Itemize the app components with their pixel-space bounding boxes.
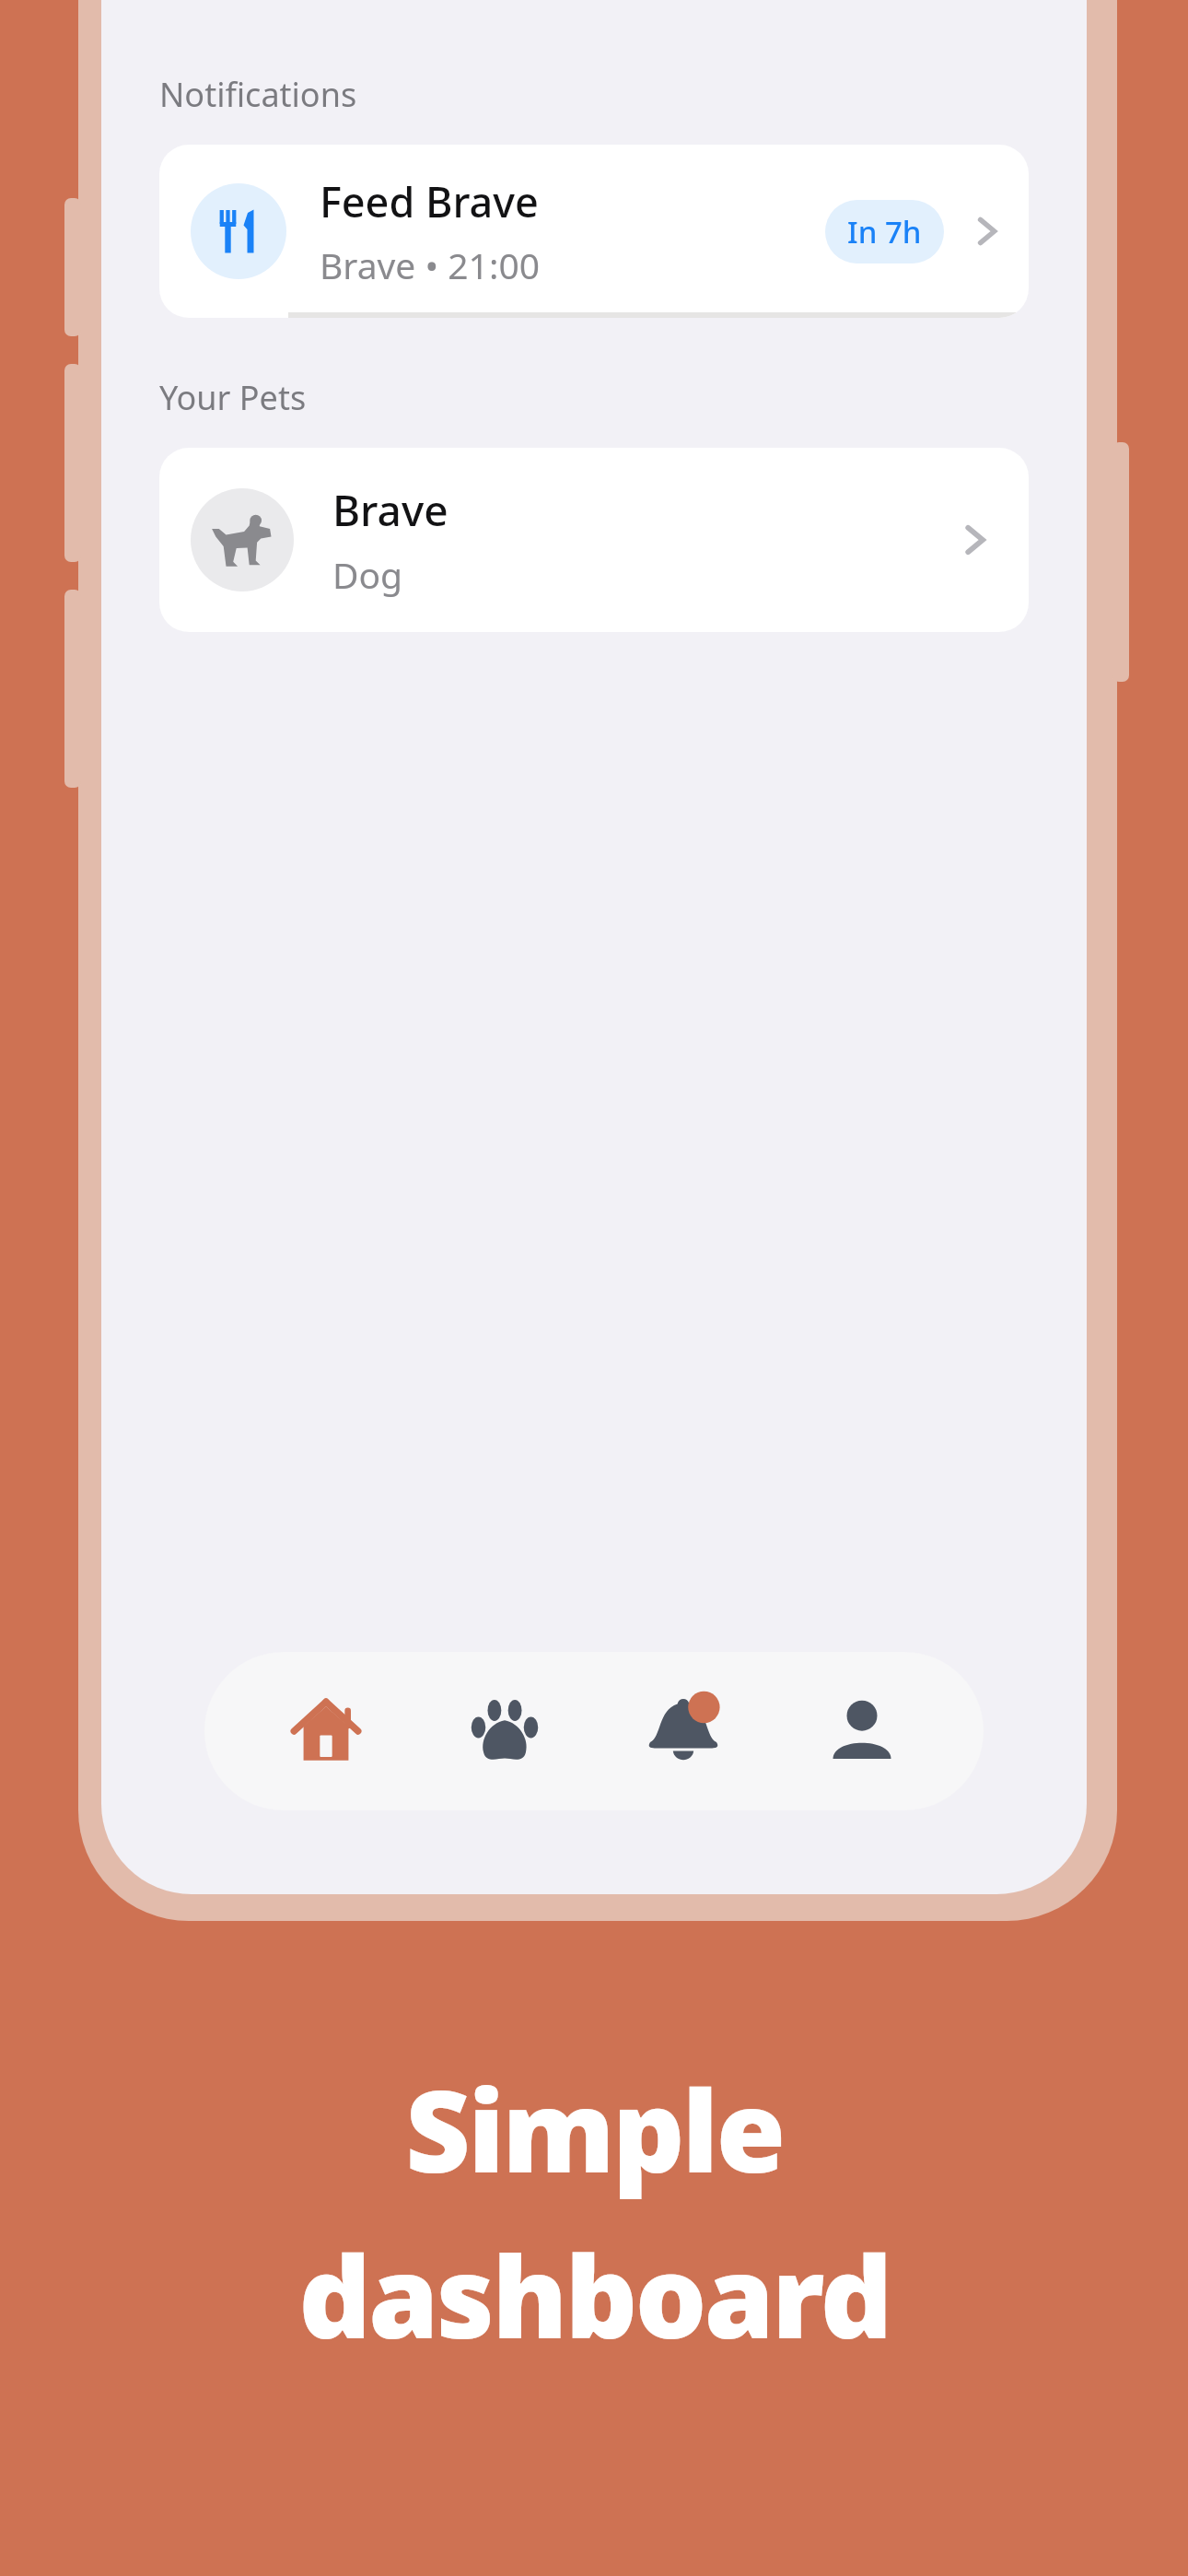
button[interactable]: Home bbox=[269, 1674, 383, 1788]
button[interactable]: Feed Brave bbox=[159, 145, 1029, 318]
staticText: Brave • 21:00 bbox=[320, 240, 540, 289]
staticText: Simple bbox=[405, 2053, 784, 2206]
staticText: Feed Brave bbox=[320, 173, 539, 229]
staticText: Brave bbox=[332, 481, 448, 539]
button[interactable]: Notifications bbox=[626, 1674, 740, 1788]
button[interactable]: Profile bbox=[805, 1674, 919, 1788]
button[interactable]: Pets bbox=[448, 1674, 562, 1788]
staticText: Notifications bbox=[159, 72, 357, 117]
staticText: Dog bbox=[332, 550, 403, 599]
staticText: dashboard bbox=[298, 2219, 891, 2371]
button[interactable]: Brave bbox=[159, 448, 1029, 632]
staticText: Your Pets bbox=[159, 375, 307, 420]
staticText: In 7h bbox=[847, 211, 922, 252]
